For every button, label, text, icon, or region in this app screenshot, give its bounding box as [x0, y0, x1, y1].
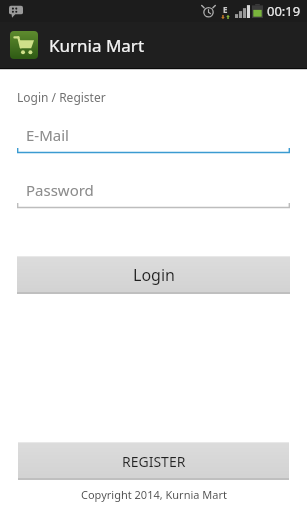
staticText: E	[223, 4, 228, 15]
button[interactable]: Password	[17, 177, 290, 208]
button[interactable]: E-Mail	[17, 122, 290, 153]
button[interactable]: REGISTER	[18, 442, 289, 480]
staticText: E-Mail	[26, 125, 69, 145]
staticText: Login	[133, 264, 175, 286]
staticText: 00:19	[267, 2, 301, 20]
staticText: Copyright 2014, Kurnia Mart	[81, 487, 227, 502]
staticText: Login / Register	[17, 89, 106, 105]
staticText: Password	[26, 180, 94, 200]
staticText: Kurnia Mart	[49, 34, 145, 57]
staticText: REGISTER	[122, 452, 186, 471]
button[interactable]: Login	[17, 256, 290, 294]
